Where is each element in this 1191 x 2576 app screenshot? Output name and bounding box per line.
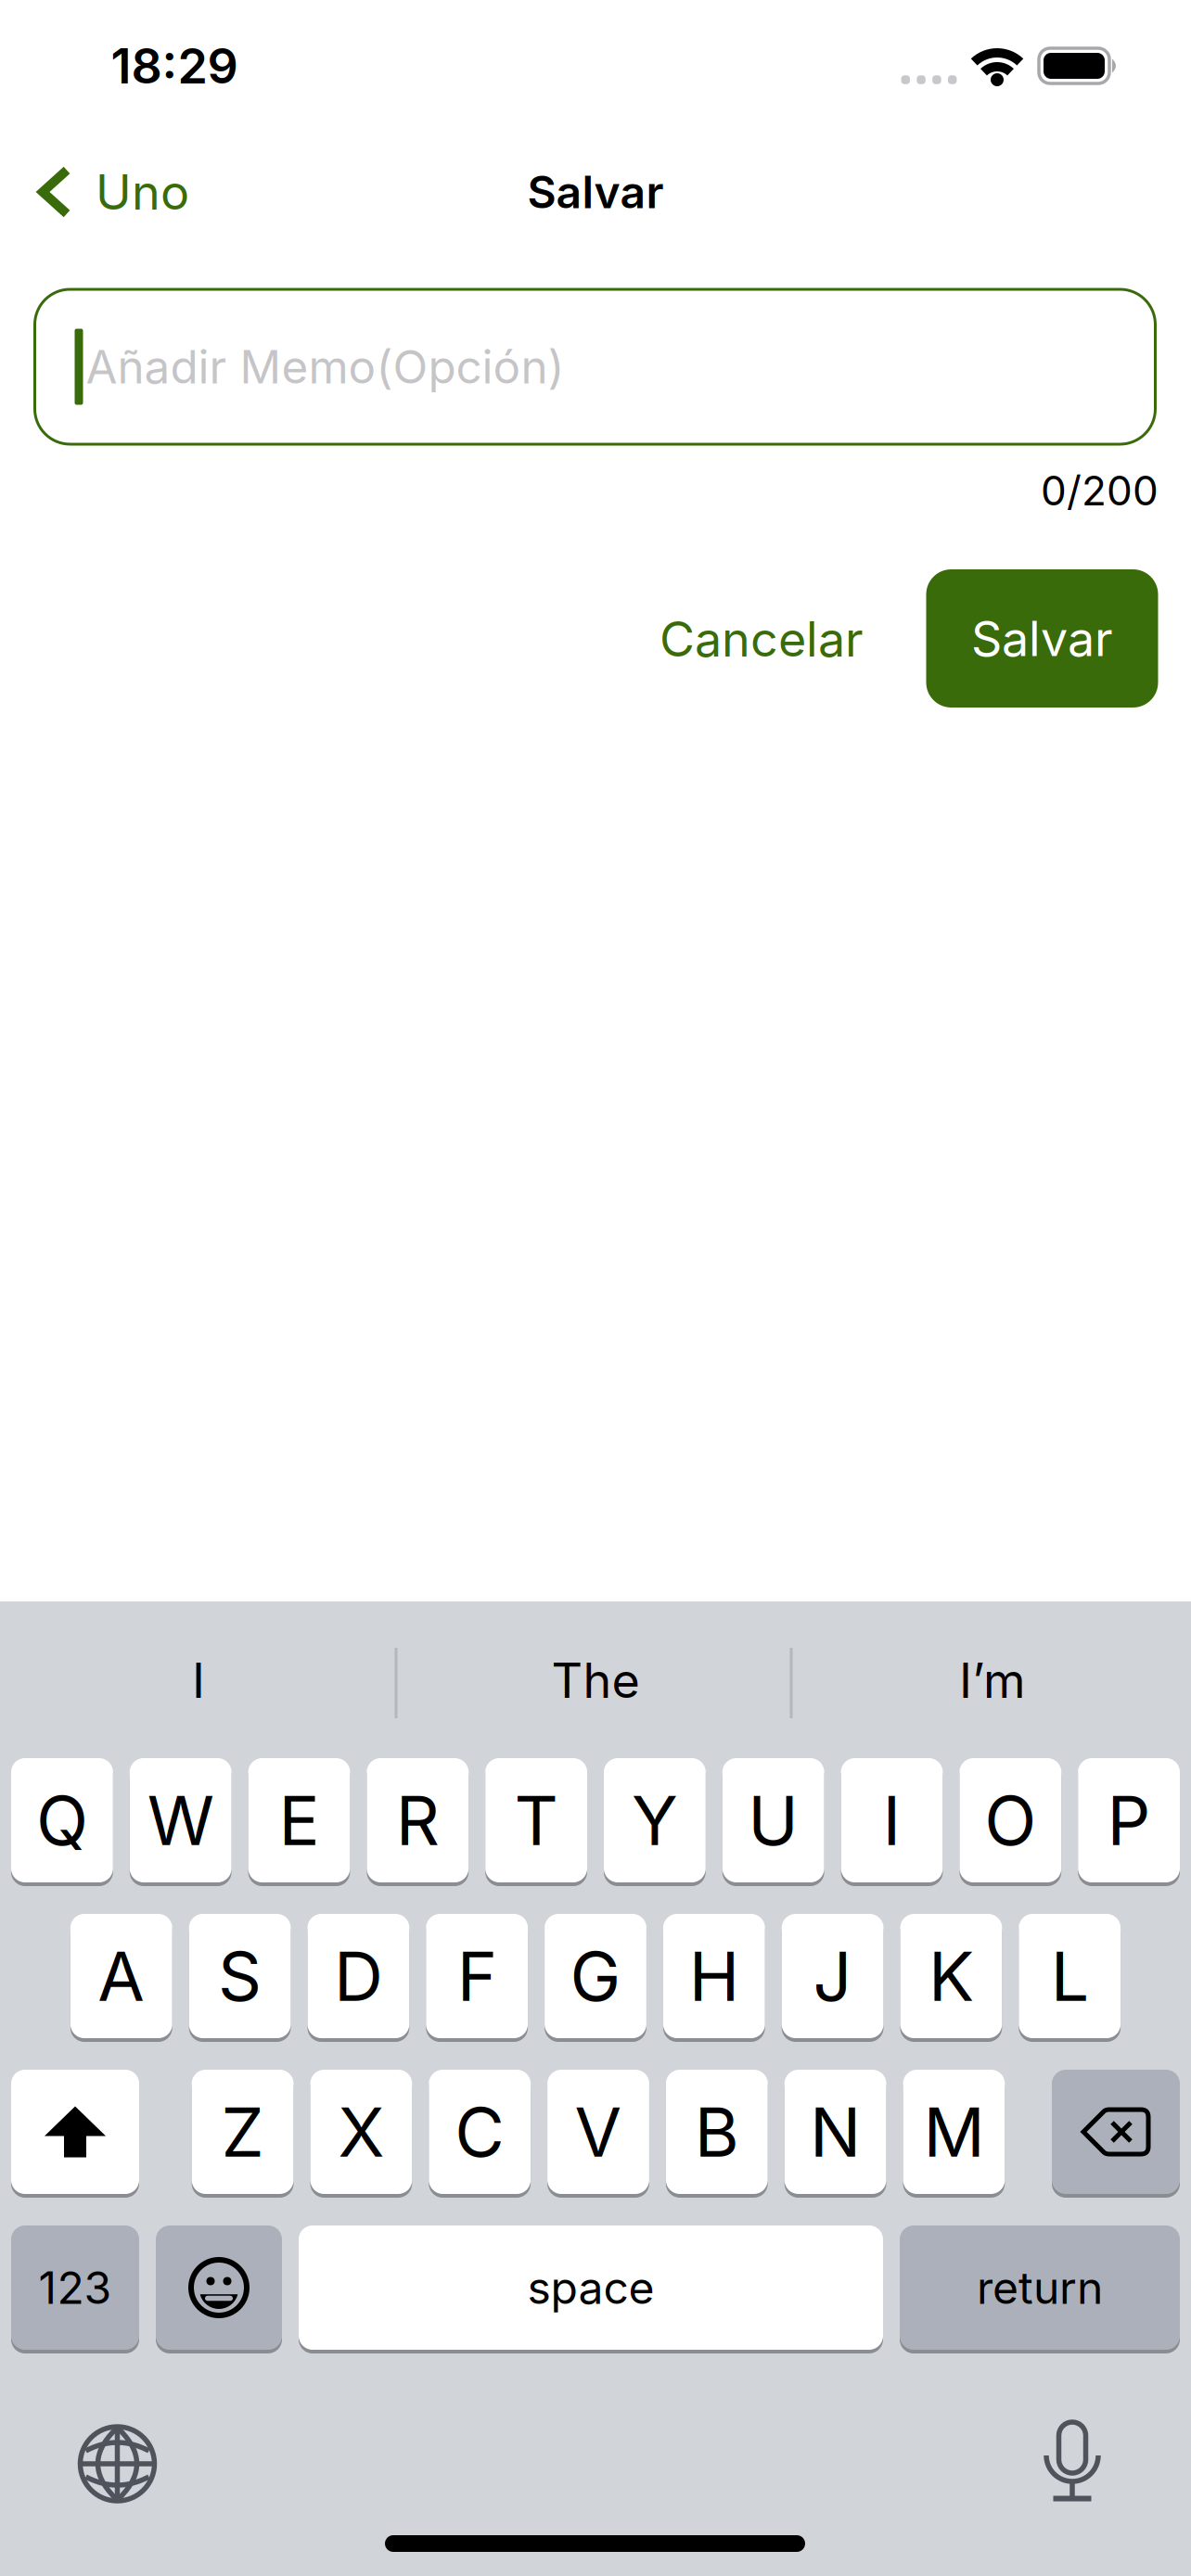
- staticText: T: [514, 1780, 558, 1860]
- button[interactable]: Dictation: [1045, 2420, 1099, 2502]
- button[interactable]: K: [900, 1914, 1002, 2038]
- staticText: E: [279, 1780, 320, 1860]
- button[interactable]: S: [189, 1914, 291, 2038]
- button[interactable]: R: [367, 1758, 469, 1882]
- staticText: L: [1051, 1936, 1089, 2016]
- button[interactable]: I’m: [796, 1620, 1189, 1741]
- staticText: N: [810, 2092, 861, 2172]
- staticText: Cancelar: [660, 610, 864, 667]
- button[interactable]: Añadir Memo(Opción): [35, 289, 1155, 444]
- button[interactable]: X: [310, 2070, 412, 2194]
- button[interactable]: return: [900, 2225, 1180, 2350]
- button[interactable]: P: [1078, 1758, 1180, 1882]
- button[interactable]: Salvar: [926, 569, 1158, 708]
- button[interactable]: Z: [192, 2070, 294, 2194]
- staticText: D: [334, 1936, 383, 2016]
- staticText: X: [338, 2092, 384, 2172]
- staticText: I’m: [959, 1652, 1026, 1709]
- button[interactable]: L: [1019, 1914, 1121, 2038]
- staticText: P: [1107, 1780, 1151, 1860]
- button[interactable]: M: [903, 2070, 1005, 2194]
- button[interactable]: G: [545, 1914, 646, 2038]
- button[interactable]: W: [130, 1758, 232, 1882]
- staticText: Salvar: [971, 610, 1113, 667]
- staticText: Q: [36, 1780, 88, 1860]
- button[interactable]: D: [307, 1914, 409, 2038]
- button[interactable]: V: [547, 2070, 649, 2194]
- button[interactable]: I: [841, 1758, 943, 1882]
- button[interactable]: Y: [604, 1758, 706, 1882]
- button[interactable]: Back: [37, 141, 315, 243]
- staticText: return: [977, 2261, 1103, 2314]
- staticText: J: [813, 1936, 852, 2016]
- button[interactable]: A: [70, 1914, 172, 2038]
- staticText: B: [695, 2092, 739, 2172]
- button[interactable]: E: [248, 1758, 350, 1882]
- button[interactable]: Q: [11, 1758, 113, 1882]
- button[interactable]: Cancelar: [660, 610, 864, 667]
- staticText: F: [457, 1936, 497, 2016]
- staticText: R: [396, 1780, 439, 1860]
- staticText: 0/200: [1041, 466, 1159, 515]
- staticText: M: [923, 2092, 985, 2172]
- staticText: Añadir Memo(Opción): [86, 340, 564, 394]
- button[interactable]: F: [426, 1914, 528, 2038]
- staticText: S: [218, 1936, 262, 2016]
- button[interactable]: Emoji: [156, 2225, 282, 2350]
- button[interactable]: U: [722, 1758, 824, 1882]
- button[interactable]: Delete: [1052, 2070, 1180, 2194]
- staticText: Salvar: [527, 166, 664, 218]
- button[interactable]: The: [399, 1620, 792, 1741]
- button[interactable]: Shift: [11, 2070, 139, 2194]
- button[interactable]: Numbers: [11, 2225, 139, 2350]
- staticText: V: [575, 2092, 622, 2172]
- staticText: U: [748, 1780, 799, 1860]
- button[interactable]: H: [663, 1914, 765, 2038]
- staticText: G: [570, 1936, 621, 2016]
- button[interactable]: space: [299, 2225, 883, 2350]
- button[interactable]: T: [485, 1758, 587, 1882]
- staticText: Uno: [96, 163, 189, 220]
- button[interactable]: B: [666, 2070, 768, 2194]
- staticText: 18:29: [111, 37, 238, 94]
- staticText: A: [98, 1936, 145, 2016]
- staticText: C: [455, 2092, 505, 2172]
- button[interactable]: C: [429, 2070, 531, 2194]
- staticText: space: [527, 2261, 654, 2314]
- staticText: 123: [38, 2261, 112, 2314]
- staticText: W: [147, 1780, 214, 1860]
- staticText: Y: [632, 1780, 678, 1860]
- staticText: O: [984, 1780, 1036, 1860]
- staticText: Z: [221, 2092, 264, 2172]
- button[interactable]: J: [782, 1914, 884, 2038]
- button[interactable]: O: [959, 1758, 1061, 1882]
- staticText: I: [883, 1780, 901, 1860]
- button[interactable]: Next keyboard: [79, 2426, 155, 2502]
- staticText: H: [689, 1936, 739, 2016]
- staticText: K: [928, 1936, 974, 2016]
- staticText: The: [551, 1652, 640, 1709]
- staticText: I: [192, 1652, 205, 1709]
- button[interactable]: I: [2, 1620, 395, 1741]
- button[interactable]: N: [784, 2070, 886, 2194]
